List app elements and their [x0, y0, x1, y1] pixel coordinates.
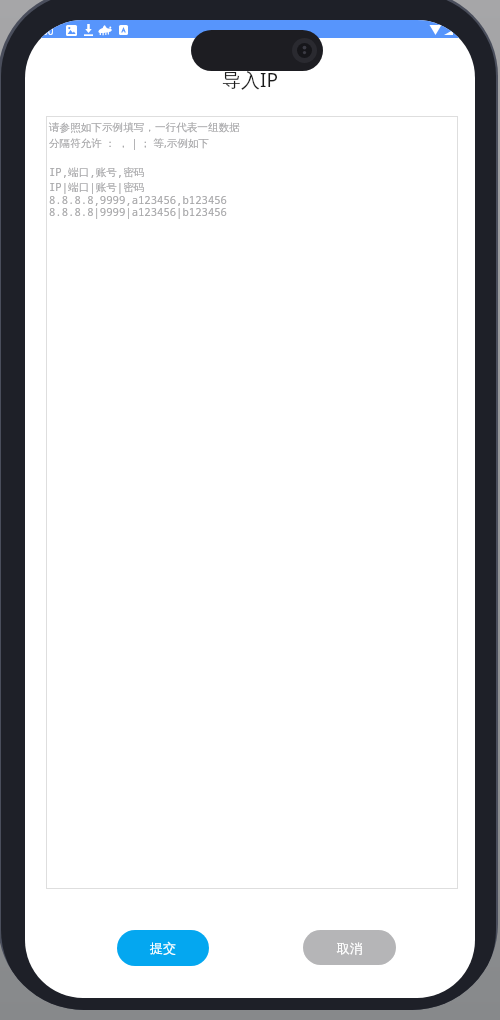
staticText: 取消	[337, 940, 363, 956]
staticText: 10:30	[28, 24, 54, 38]
staticText: 导入IP	[25, 67, 475, 93]
staticText: IP|端口|账号|密码	[49, 180, 145, 194]
staticText: 8.8.8.8|9999|a123456|b123456	[49, 205, 227, 219]
button[interactable]: 提交	[117, 930, 209, 966]
staticText: 请参照如下示例填写，一行代表一组数据	[49, 121, 240, 134]
staticText: 8.8.8.8,9999,a123456,b123456	[49, 193, 227, 207]
staticText: 分隔符允许 ： ， | ； 等,示例如下	[49, 136, 210, 150]
staticText: IP,端口,账号,密码	[49, 165, 145, 179]
button[interactable]: 取消	[303, 930, 396, 965]
staticText: 提交	[150, 940, 176, 956]
